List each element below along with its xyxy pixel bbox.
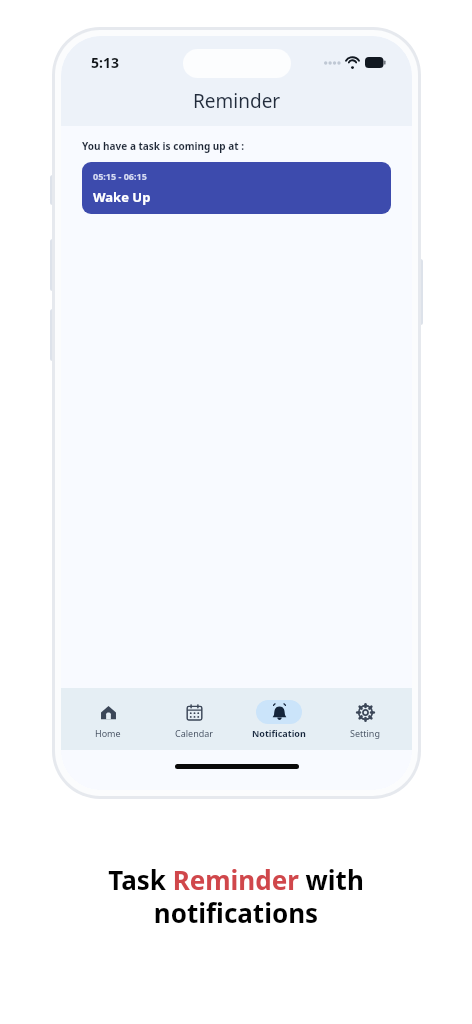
staticText: Task Reminder with notifications <box>108 862 364 931</box>
staticText: Reminder <box>193 88 281 114</box>
button[interactable]: Home <box>70 700 146 739</box>
staticText: Setting <box>350 727 380 739</box>
staticText: 5:13 <box>91 53 119 72</box>
staticText: Notification <box>252 727 306 739</box>
staticText: You have a task is coming up at : <box>82 139 244 153</box>
staticText: Wake Up <box>93 188 151 206</box>
staticText: Calendar <box>175 727 213 739</box>
staticText: Home <box>95 727 121 739</box>
button[interactable]: Notification <box>241 700 317 739</box>
button[interactable]: Setting <box>327 700 403 739</box>
button[interactable]: 05:15 - 06:15 <box>82 162 391 214</box>
staticText: 05:15 - 06:15 <box>93 170 147 182</box>
button[interactable]: Calendar <box>156 700 232 739</box>
